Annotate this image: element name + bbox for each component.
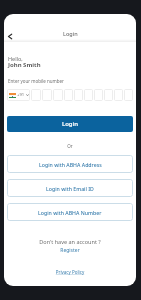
button[interactable]: Login with ABHA Address bbox=[7, 155, 133, 173]
button[interactable]: Back bbox=[4, 30, 16, 43]
staticText: Don't have an account ? bbox=[7, 238, 133, 245]
staticText: +91 bbox=[17, 92, 25, 98]
button[interactable]: Register bbox=[7, 247, 133, 254]
button[interactable] bbox=[104, 89, 113, 101]
staticText: Enter your mobile number bbox=[8, 78, 64, 84]
staticText: Login with Email ID bbox=[46, 185, 94, 192]
staticText: John Smith bbox=[8, 61, 41, 69]
staticText: Login bbox=[62, 120, 78, 128]
staticText: Login bbox=[63, 30, 78, 37]
button[interactable] bbox=[53, 89, 63, 101]
button[interactable]: Login bbox=[7, 116, 133, 132]
button[interactable] bbox=[94, 89, 103, 101]
staticText: Or bbox=[7, 143, 133, 149]
button[interactable]: Login with ABHA Number bbox=[7, 203, 133, 221]
button[interactable] bbox=[42, 89, 52, 101]
button[interactable] bbox=[124, 89, 133, 101]
button[interactable] bbox=[84, 89, 93, 101]
button[interactable]: Login with Email ID bbox=[7, 179, 133, 197]
button[interactable] bbox=[31, 89, 41, 101]
button[interactable] bbox=[114, 89, 123, 101]
button[interactable]: +91 bbox=[7, 89, 30, 101]
button[interactable] bbox=[74, 89, 83, 101]
staticText: Login with ABHA Address bbox=[39, 161, 102, 168]
button[interactable] bbox=[64, 89, 73, 101]
button[interactable]: Privacy Policy bbox=[7, 269, 133, 275]
staticText: Login with ABHA Number bbox=[38, 209, 102, 216]
staticText: Hello, bbox=[8, 55, 23, 62]
